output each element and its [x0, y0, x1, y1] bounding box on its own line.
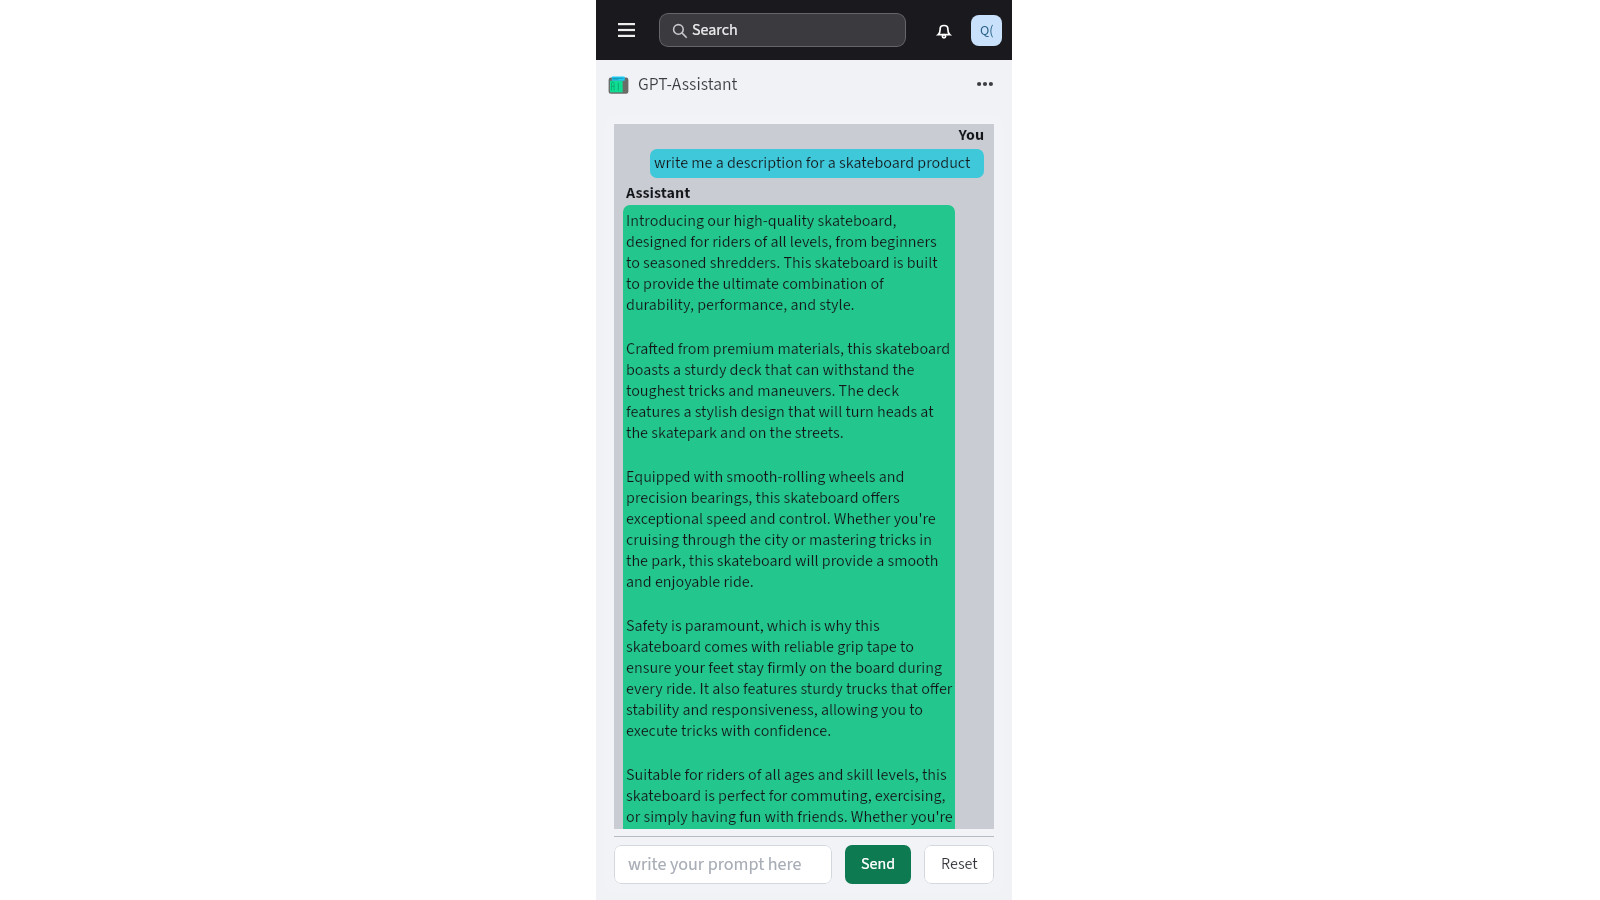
staticText: Suitable for riders of all ages and skil…: [626, 764, 953, 829]
button[interactable]: Send: [845, 845, 911, 884]
button[interactable]: Search: [659, 13, 906, 47]
staticText: You: [626, 124, 984, 147]
button[interactable]: Notifications: [930, 17, 957, 44]
staticText: write me a description for a skateboard …: [654, 152, 971, 175]
button[interactable]: write your prompt here: [614, 845, 832, 884]
staticText: Search: [692, 19, 738, 42]
button[interactable]: Account: [971, 15, 1002, 46]
staticText: GPT-Assistant: [638, 72, 738, 97]
staticText: Safety is paramount, which is why this s…: [626, 615, 953, 743]
button[interactable]: Reset: [924, 845, 994, 884]
staticText: Reset: [941, 853, 978, 876]
button[interactable]: Open navigation menu: [617, 22, 635, 38]
staticText: Equipped with smooth-rolling wheels and …: [626, 466, 953, 594]
button[interactable]: More options: [969, 68, 1001, 100]
staticText: Assistant: [626, 182, 691, 205]
staticText: write your prompt here: [628, 852, 802, 878]
staticText: Q(: [980, 21, 994, 41]
staticText: Introducing our high-quality skateboard,…: [626, 210, 953, 317]
staticText: Crafted from premium materials, this ska…: [626, 338, 953, 445]
staticText: Send: [861, 853, 896, 876]
